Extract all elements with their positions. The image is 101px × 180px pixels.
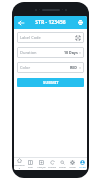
button[interactable]: Print label	[76, 18, 85, 27]
button[interactable]: SUBMIT	[17, 78, 84, 87]
staticText: Pickup	[59, 166, 66, 169]
staticText: STR - 123456	[35, 19, 66, 26]
button[interactable]: Change	[47, 158, 57, 170]
staticText: New Job	[37, 166, 46, 169]
staticText: RED	[70, 65, 78, 70]
button[interactable]: Profile	[77, 158, 87, 170]
staticText: Duration	[20, 50, 37, 55]
button[interactable]: Admin	[67, 158, 77, 170]
button[interactable]: Dashboard	[14, 158, 25, 170]
button[interactable]: Back	[16, 18, 25, 27]
button[interactable]: New Job	[36, 158, 47, 170]
button[interactable]: Scan	[25, 158, 36, 170]
button[interactable]: Scan code	[75, 35, 81, 41]
staticText: Dashboard	[14, 164, 25, 170]
button[interactable]: Color	[17, 62, 84, 73]
staticText: Scan	[28, 166, 33, 169]
staticText: Label Code	[20, 35, 41, 40]
staticText: Color	[20, 65, 31, 70]
button[interactable]: Pickup	[57, 158, 67, 170]
button[interactable]: Label Code	[17, 32, 84, 43]
staticText: Change	[48, 166, 56, 169]
staticText: 10 Days	[64, 50, 78, 55]
staticText: SUBMIT	[43, 80, 59, 85]
button[interactable]: Duration	[17, 47, 84, 58]
staticText: Profile	[79, 166, 86, 169]
staticText: Admin	[69, 166, 76, 169]
